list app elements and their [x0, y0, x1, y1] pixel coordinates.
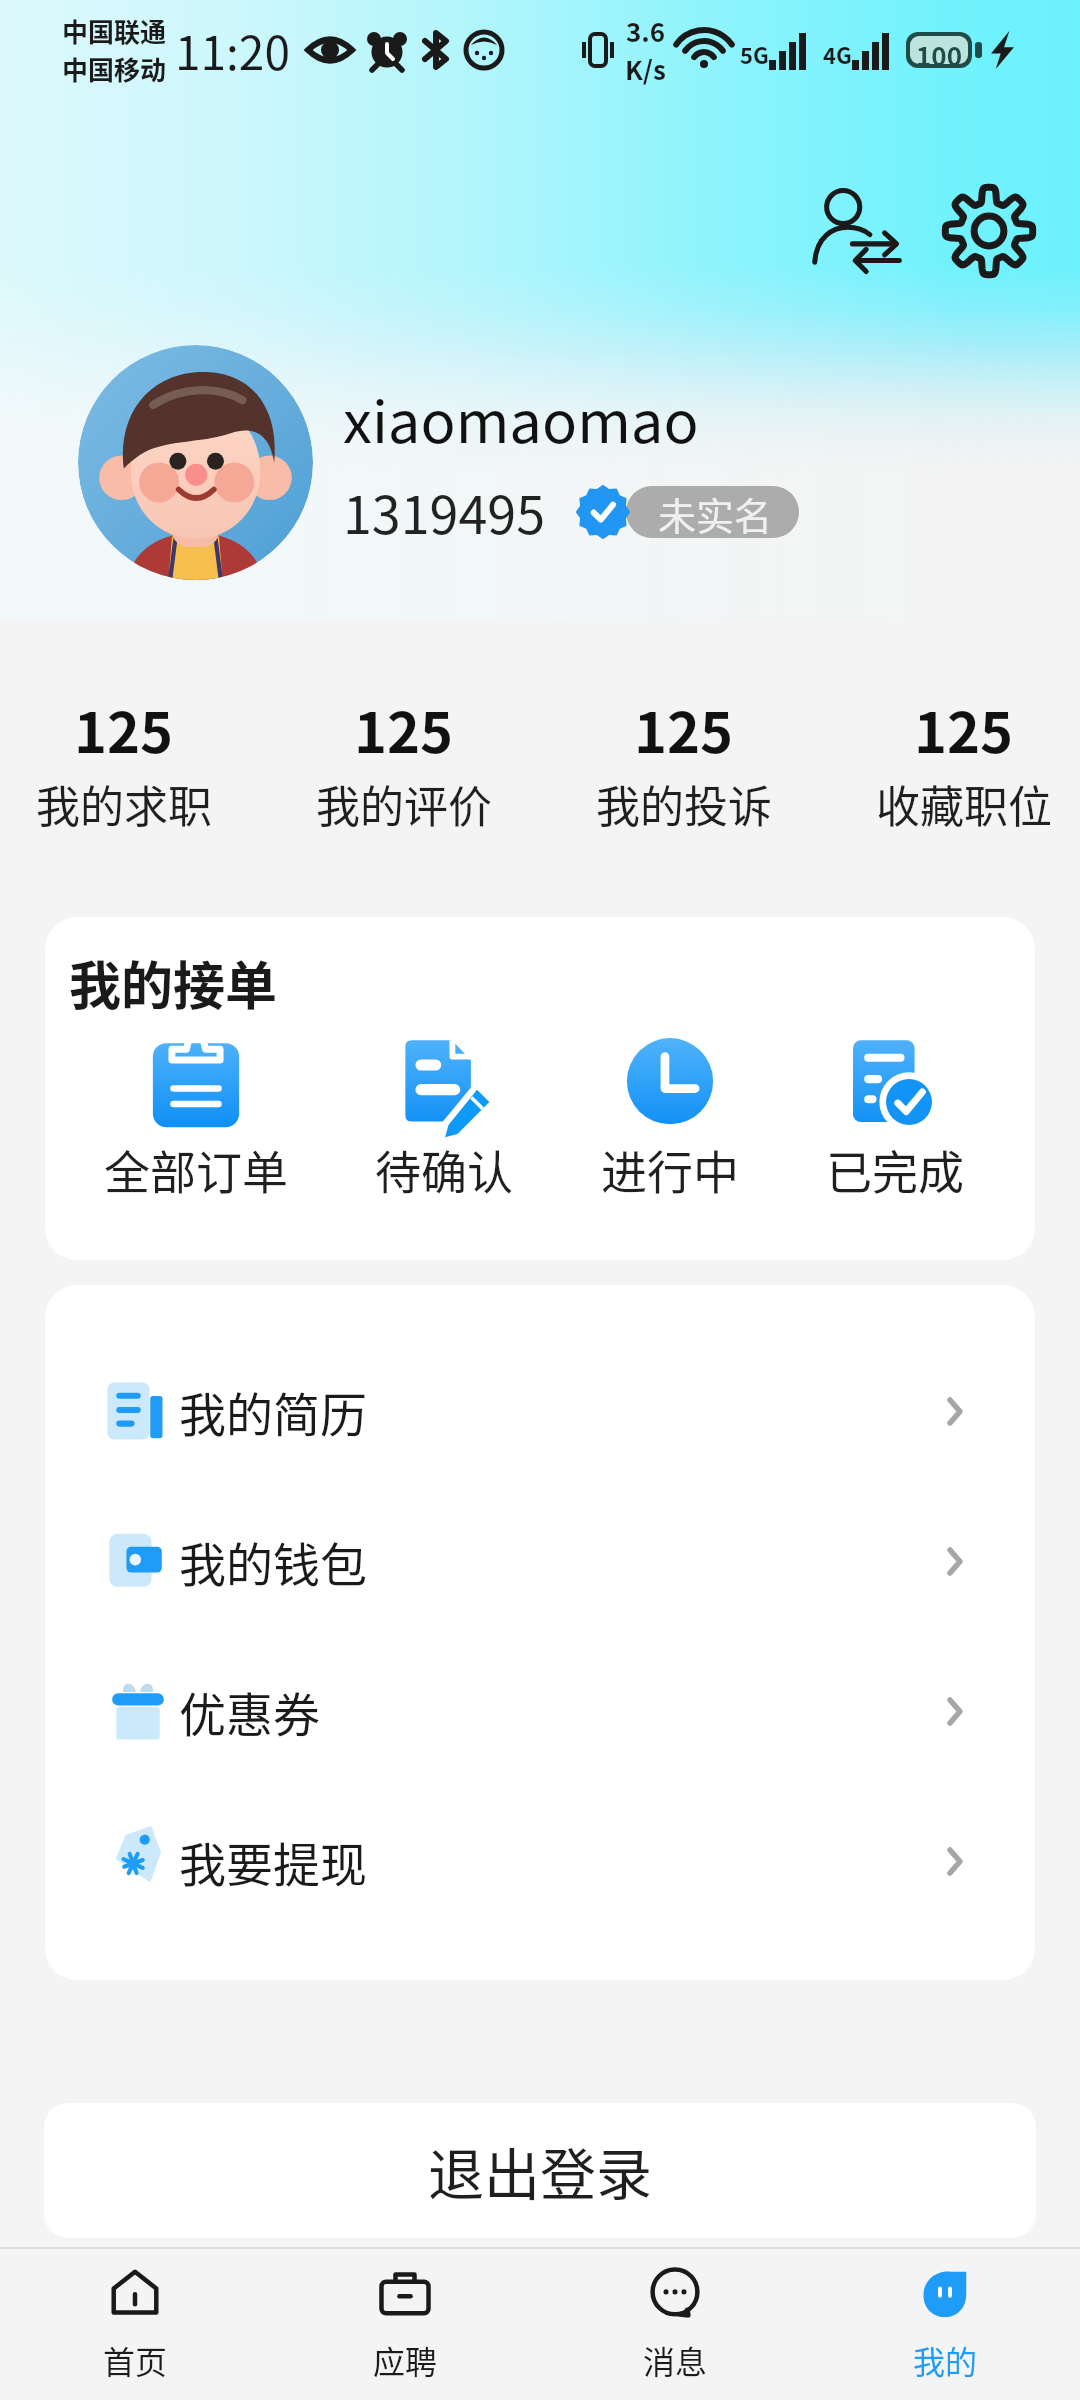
- button[interactable]: 125: [864, 682, 1064, 842]
- button[interactable]: 125: [304, 682, 504, 842]
- button[interactable]: 我的简历: [45, 1336, 1035, 1486]
- button[interactable]: 我的钱包: [45, 1486, 1035, 1636]
- button[interactable]: 待确认: [357, 1021, 531, 1205]
- staticText: 退出登录: [428, 2130, 652, 2211]
- button[interactable]: 已完成: [808, 1021, 982, 1205]
- button[interactable]: Switch account: [802, 176, 912, 286]
- button[interactable]: 我要提现: [45, 1786, 1035, 1936]
- button[interactable]: 125: [24, 682, 224, 842]
- staticText: 我的简历: [179, 1377, 367, 1445]
- button[interactable]: 应聘: [270, 2247, 540, 2400]
- staticText: 125: [354, 688, 454, 769]
- staticText: xiaomaomao: [343, 376, 699, 460]
- staticText: 125: [74, 688, 174, 769]
- staticText: 3.6: [626, 12, 666, 50]
- staticText: 我要提现: [179, 1827, 367, 1895]
- staticText: 全部订单: [104, 1136, 288, 1203]
- button[interactable]: 全部订单: [86, 1021, 306, 1205]
- button[interactable]: Settings: [934, 176, 1044, 286]
- staticText: 收藏职位: [876, 772, 1052, 836]
- button[interactable]: 125: [584, 682, 784, 842]
- staticText: 首页: [103, 2337, 168, 2383]
- staticText: 我的钱包: [179, 1527, 367, 1595]
- button[interactable]: 退出登录: [44, 2103, 1036, 2238]
- button[interactable]: 首页: [0, 2247, 270, 2400]
- staticText: 未实名: [658, 486, 773, 538]
- staticText: 125: [914, 688, 1014, 769]
- staticText: 125: [634, 688, 734, 769]
- staticText: 已完成: [826, 1136, 964, 1203]
- staticText: 待确认: [375, 1136, 513, 1203]
- staticText: 100: [916, 36, 963, 64]
- button[interactable]: 我的: [810, 2247, 1080, 2400]
- staticText: 11:20: [175, 17, 290, 84]
- staticText: 中国移动: [62, 50, 167, 88]
- staticText: 消息: [643, 2337, 708, 2383]
- staticText: 进行中: [601, 1136, 739, 1203]
- staticText: 4G: [823, 38, 852, 70]
- staticText: 我的投诉: [596, 772, 772, 836]
- staticText: K/s: [625, 50, 666, 88]
- staticText: 我的接单: [69, 945, 278, 1020]
- staticText: 我的评价: [316, 772, 492, 836]
- staticText: 中国联通: [62, 12, 167, 50]
- staticText: 应聘: [373, 2337, 438, 2383]
- button[interactable]: 进行中: [583, 1021, 757, 1205]
- button[interactable]: 消息: [540, 2247, 810, 2400]
- button[interactable]: 优惠券: [45, 1636, 1035, 1786]
- staticText: 我的: [913, 2337, 978, 2383]
- button[interactable]: xiaomaomao: [78, 345, 799, 580]
- staticText: 1319495: [343, 474, 546, 549]
- staticText: 优惠券: [179, 1677, 320, 1745]
- staticText: 5G: [740, 38, 769, 70]
- staticText: 我的求职: [36, 772, 212, 836]
